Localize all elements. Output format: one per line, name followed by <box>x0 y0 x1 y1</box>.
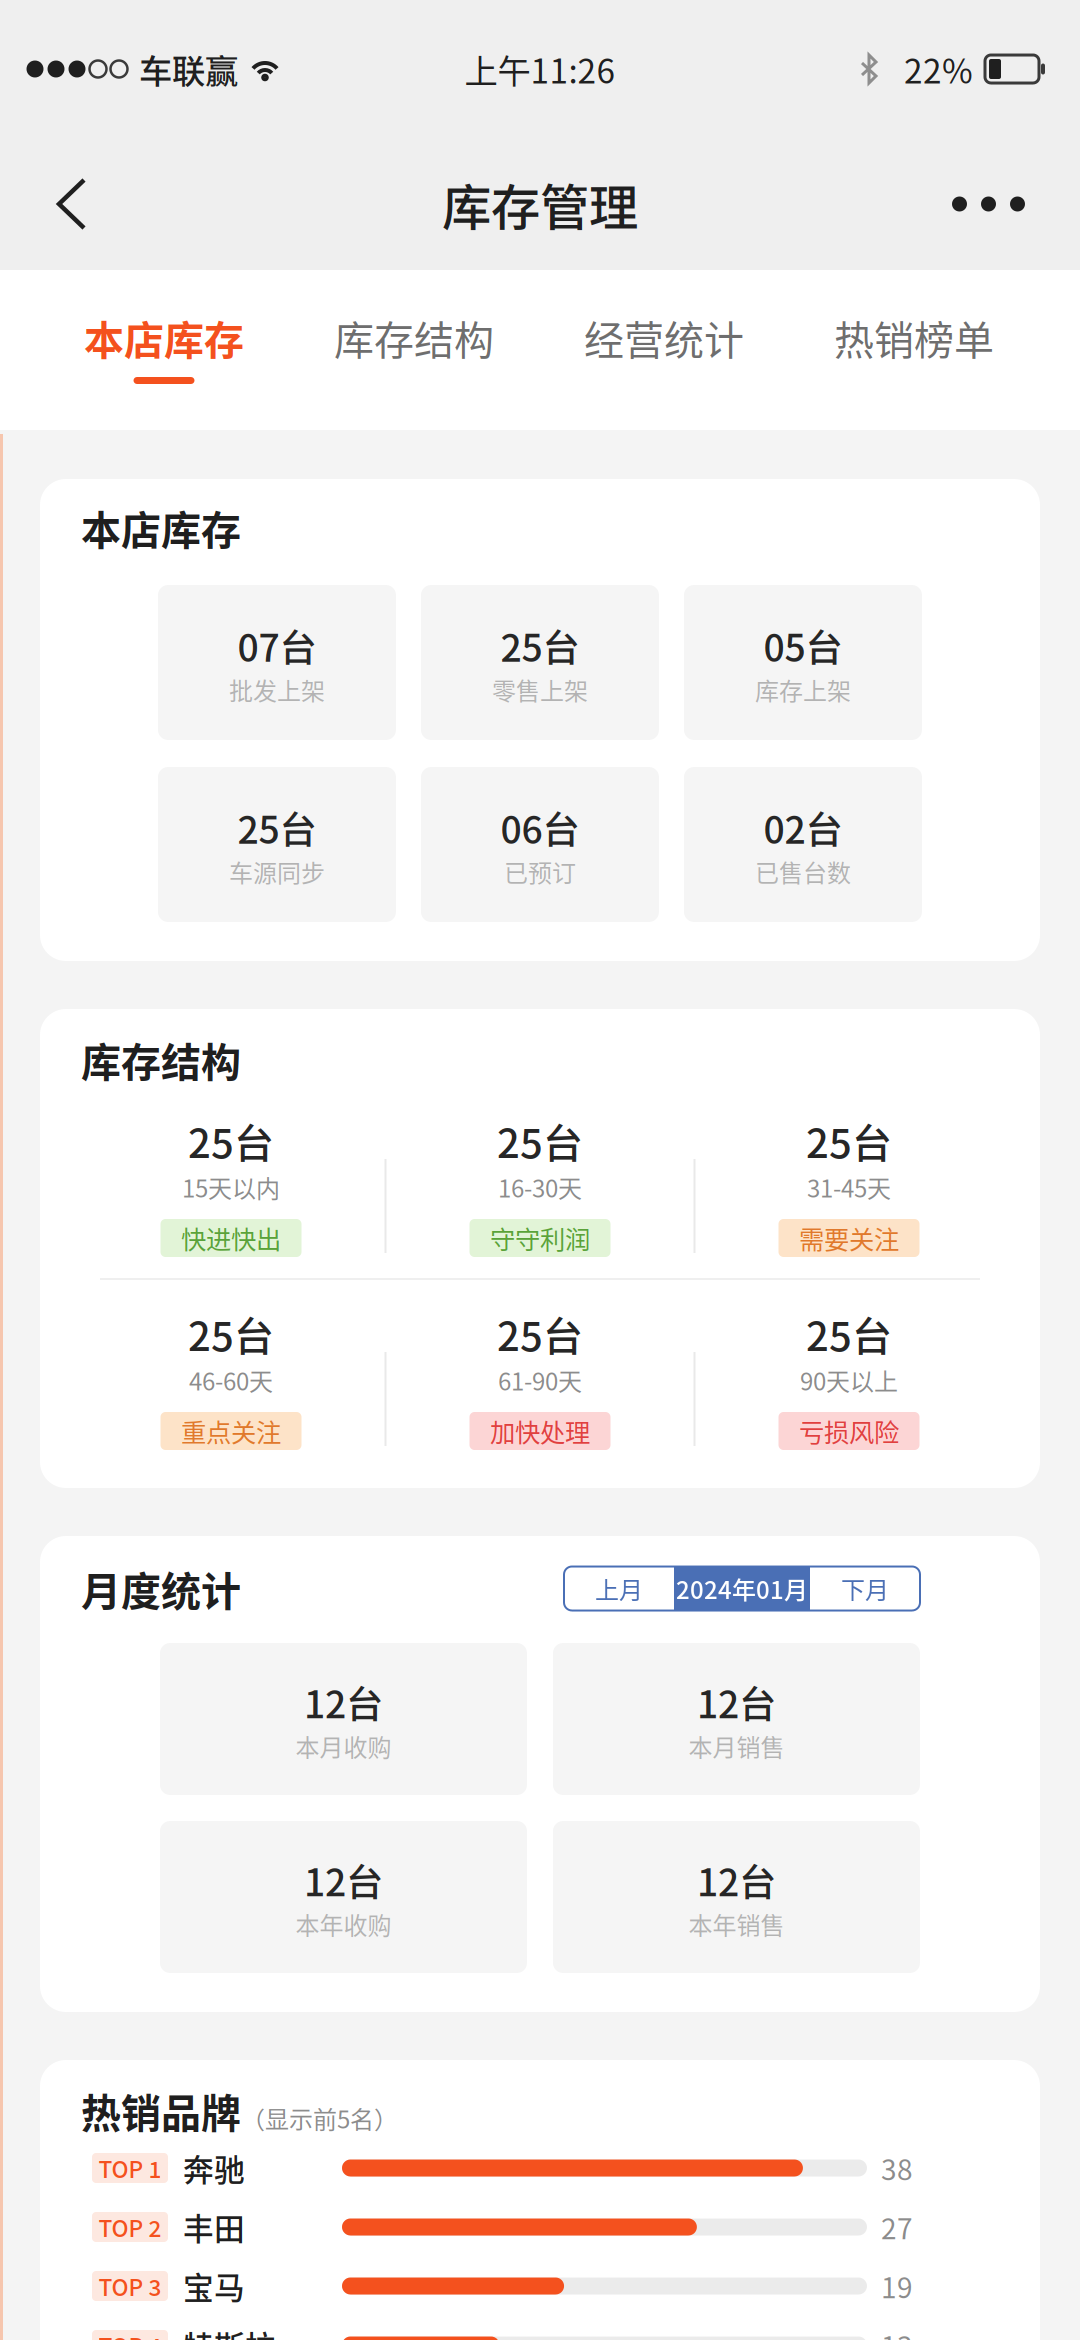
staticText: 19 <box>881 2266 913 2306</box>
staticText: 守守利润 <box>490 1220 590 1256</box>
staticText: 上月 <box>595 1571 643 1606</box>
staticText: TOP 3 <box>98 2270 161 2302</box>
staticText: 上午11:26 <box>464 45 615 93</box>
button[interactable]: 02台 <box>684 767 922 922</box>
button[interactable]: 2024年01月 <box>674 1566 810 1610</box>
staticText: 加快处理 <box>490 1413 590 1449</box>
button[interactable]: 返回 <box>0 151 119 257</box>
staticText: 31-45天 <box>807 1170 891 1204</box>
button[interactable]: 库存结构 <box>291 270 537 430</box>
button[interactable]: 下月 <box>810 1566 920 1610</box>
staticText: 月度统计 <box>81 1559 241 1617</box>
staticText: 丰田 <box>183 2205 245 2249</box>
staticText: 本店库存 <box>84 308 244 366</box>
staticText: 本月销售 <box>688 1729 784 1763</box>
staticText: 38 <box>881 2148 913 2188</box>
staticText: TOP 1 <box>98 2152 161 2184</box>
staticText: （显示前5名） <box>241 2101 398 2135</box>
staticText: 25台 <box>500 618 579 673</box>
button[interactable]: 12台 <box>553 1643 920 1795</box>
button[interactable]: 12台 <box>160 1643 527 1795</box>
staticText: 05台 <box>763 618 842 673</box>
button[interactable]: 12台 <box>553 1821 920 1973</box>
staticText: 12台 <box>304 1675 383 1729</box>
button[interactable]: 12台 <box>160 1821 527 1973</box>
staticText: 90天以上 <box>800 1363 898 1397</box>
staticText: 快进快出 <box>181 1220 281 1256</box>
staticText: 12台 <box>304 1853 383 1907</box>
staticText: 已售台数 <box>755 854 851 889</box>
button[interactable]: 07台 <box>158 585 396 740</box>
button[interactable]: 本店库存 <box>41 270 287 430</box>
staticText: TOP 2 <box>98 2211 161 2243</box>
staticText: 2024年01月 <box>676 1571 808 1606</box>
staticText: 22% <box>904 45 973 93</box>
staticText: 热销榜单 <box>834 308 994 366</box>
button[interactable]: 经营统计 <box>541 270 787 430</box>
staticText: 宝马 <box>183 2264 245 2308</box>
staticText: 库存结构 <box>81 1030 241 1088</box>
staticText: 经营统计 <box>584 308 744 366</box>
staticText: 车联赢 <box>139 45 238 93</box>
staticText: 重点关注 <box>181 1413 281 1449</box>
staticText: 批发上架 <box>229 672 325 707</box>
staticText: 25台 <box>497 1111 583 1169</box>
staticText: 零售上架 <box>492 672 588 707</box>
button[interactable]: 05台 <box>684 585 922 740</box>
staticText: TOP 4 <box>98 2329 161 2340</box>
staticText: 本店库存 <box>81 498 241 556</box>
staticText: 下月 <box>841 1571 889 1606</box>
staticText: 13 <box>881 2325 913 2340</box>
staticText: 46-60天 <box>189 1363 273 1397</box>
button[interactable]: 更多 <box>922 151 1080 257</box>
staticText: 亏损风险 <box>799 1413 899 1449</box>
staticText: 27 <box>881 2207 913 2247</box>
button[interactable]: 25台 <box>421 585 659 740</box>
staticText: 库存管理 <box>442 168 638 240</box>
staticText: 16-30天 <box>498 1170 582 1204</box>
staticText: 已预订 <box>504 854 576 889</box>
button[interactable]: 06台 <box>421 767 659 922</box>
staticText: 25台 <box>497 1304 583 1362</box>
staticText: 本月收购 <box>295 1729 391 1763</box>
staticText: 12台 <box>697 1675 776 1729</box>
staticText: 特斯拉 <box>183 2323 276 2340</box>
staticText: 25台 <box>806 1304 892 1362</box>
staticText: 02台 <box>763 800 842 855</box>
staticText: 06台 <box>500 800 579 855</box>
staticText: 热销品牌 <box>81 2081 241 2139</box>
staticText: 本年销售 <box>688 1907 784 1941</box>
staticText: 库存结构 <box>334 308 494 366</box>
button[interactable]: 上月 <box>564 1566 674 1610</box>
staticText: 07台 <box>237 618 316 673</box>
staticText: 25台 <box>806 1111 892 1169</box>
staticText: 15天以内 <box>182 1170 280 1204</box>
staticText: 本年收购 <box>295 1907 391 1941</box>
staticText: 奔驰 <box>183 2146 245 2190</box>
staticText: 库存上架 <box>755 672 851 707</box>
staticText: 25台 <box>188 1304 274 1362</box>
staticText: 12台 <box>697 1853 776 1907</box>
staticText: 25台 <box>188 1111 274 1169</box>
button[interactable]: 25台 <box>158 767 396 922</box>
staticText: 25台 <box>237 800 316 855</box>
staticText: 61-90天 <box>498 1363 582 1397</box>
button[interactable]: 热销榜单 <box>791 270 1037 430</box>
staticText: 车源同步 <box>229 854 325 889</box>
staticText: 需要关注 <box>799 1220 899 1256</box>
